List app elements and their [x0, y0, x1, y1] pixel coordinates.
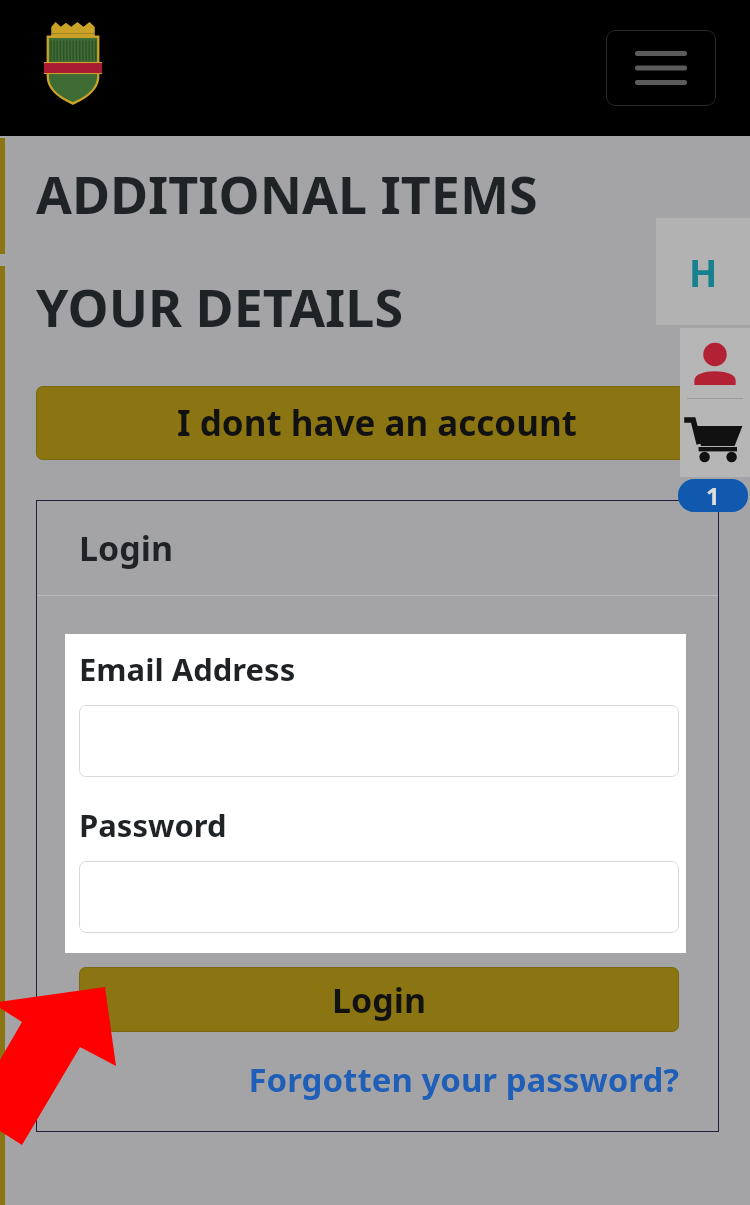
button[interactable]: Login — [79, 967, 679, 1032]
staticText: Forgotten your password? — [248, 1057, 679, 1102]
button[interactable]: Text input — [79, 861, 679, 933]
staticText: Login — [79, 525, 174, 571]
staticText: Email Address — [79, 648, 296, 690]
button[interactable]: Open menu — [606, 30, 716, 106]
button[interactable]: Forgotten your password? — [36, 1057, 679, 1102]
button[interactable]: Shopping cart, 1 item — [680, 399, 750, 477]
staticText: Login — [332, 977, 427, 1023]
staticText: ADDITIONAL ITEMS — [36, 158, 538, 229]
button[interactable]: 1 item in cart — [678, 479, 748, 512]
button[interactable]: Text input — [79, 705, 679, 777]
staticText: YOUR DETAILS — [36, 271, 404, 342]
button[interactable]: I dont have an account — [36, 386, 717, 460]
button[interactable]: Account — [680, 328, 750, 398]
staticText: H — [689, 247, 718, 297]
staticText: I dont have an account — [177, 399, 577, 447]
staticText: Password — [79, 804, 227, 846]
button[interactable]: Holmside Park home — [40, 18, 106, 106]
button[interactable]: Help chat — [656, 218, 750, 325]
staticText: 1 — [706, 479, 720, 512]
